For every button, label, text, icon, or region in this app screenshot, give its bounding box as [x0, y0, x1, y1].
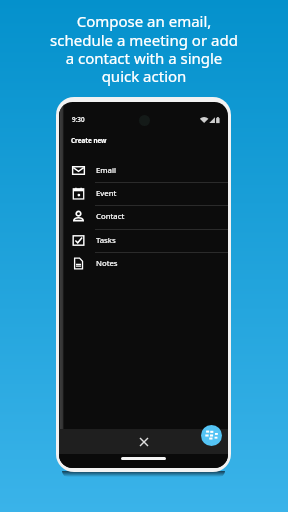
staticText: 9:30 — [72, 115, 85, 124]
staticText: Event — [96, 188, 117, 199]
staticText: Notes — [96, 258, 118, 269]
button[interactable]: Event — [59, 182, 228, 205]
button[interactable]: Close — [59, 429, 228, 454]
button[interactable]: Email — [59, 159, 228, 182]
button[interactable]: Notes — [59, 252, 228, 275]
button[interactable]: Contact — [59, 205, 228, 228]
button[interactable]: Tasks — [59, 229, 228, 252]
staticText: Email — [96, 165, 117, 176]
staticText: Compose an email, schedule a meeting or … — [0, 11, 288, 86]
staticText: Tasks — [96, 235, 116, 246]
staticText: Contact — [96, 211, 125, 222]
staticText: Create new — [71, 136, 107, 145]
button[interactable]: BlackBerry Hub — [201, 425, 222, 446]
